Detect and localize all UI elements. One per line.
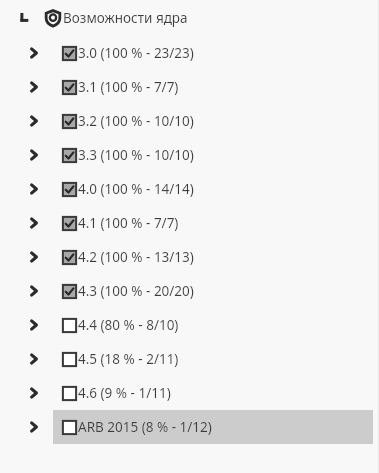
other: Expand: [28, 319, 40, 331]
staticText: 4.6 (9 % - 1/11): [78, 384, 171, 402]
staticText: Возможности ядра: [63, 9, 188, 27]
button[interactable]: Expand: [0, 36, 373, 70]
button[interactable]: Expand: [0, 240, 373, 274]
staticText: 4.0 (100 % - 14/14): [78, 180, 194, 198]
staticText: ARB 2015 (8 % - 1/12): [78, 418, 212, 436]
staticText: 3.3 (100 % - 10/10): [78, 146, 194, 164]
staticText: 4.3 (100 % - 20/20): [78, 282, 194, 300]
staticText: 4.2 (100 % - 13/13): [78, 248, 194, 266]
button[interactable]: Expand: [0, 410, 373, 444]
button[interactable]: Expand: [0, 206, 373, 240]
other: Expand: [28, 183, 40, 195]
other: Expand: [28, 285, 40, 297]
button[interactable]: Expand: [0, 274, 373, 308]
staticText: 4.1 (100 % - 7/7): [78, 214, 179, 232]
button[interactable]: Collapse: [0, 0, 373, 36]
other: Expand: [28, 47, 40, 59]
staticText: 4.4 (80 % - 8/10): [78, 316, 179, 334]
other: Expand: [28, 149, 40, 161]
other: Expand: [28, 81, 40, 93]
other: Expand: [28, 387, 40, 399]
staticText: 3.0 (100 % - 23/23): [78, 44, 194, 62]
button[interactable]: Expand: [0, 342, 373, 376]
other: Expand: [28, 217, 40, 229]
staticText: 4.5 (18 % - 2/11): [78, 350, 179, 368]
staticText: 3.1 (100 % - 7/7): [78, 78, 179, 96]
button[interactable]: Expand: [0, 104, 373, 138]
other: Expand: [28, 251, 40, 263]
staticText: 3.2 (100 % - 10/10): [78, 112, 194, 130]
button[interactable]: Expand: [0, 70, 373, 104]
button[interactable]: Expand: [0, 376, 373, 410]
other: Expand: [28, 353, 40, 365]
button[interactable]: Expand: [0, 138, 373, 172]
button[interactable]: Expand: [0, 308, 373, 342]
other: Collapse: [15, 9, 33, 27]
other: Expand: [28, 115, 40, 127]
other: Expand: [28, 421, 40, 433]
button[interactable]: Expand: [0, 172, 373, 206]
